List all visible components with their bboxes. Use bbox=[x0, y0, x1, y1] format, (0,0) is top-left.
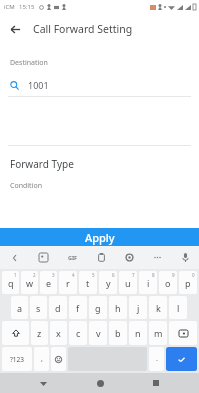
button[interactable]: Backspace bbox=[169, 321, 197, 345]
staticText: f bbox=[76, 302, 80, 314]
staticText: 3 bbox=[52, 272, 55, 278]
button[interactable]: Symbols bbox=[2, 347, 32, 371]
button[interactable]: Back bbox=[0, 14, 30, 44]
staticText: 0 bbox=[192, 272, 195, 278]
staticText: a bbox=[17, 302, 23, 314]
staticText: Destination bbox=[10, 58, 48, 68]
staticText: v bbox=[96, 327, 101, 339]
staticText: Apply bbox=[85, 230, 115, 245]
staticText: x bbox=[56, 327, 61, 339]
staticText: z bbox=[37, 327, 42, 339]
staticText: l bbox=[177, 302, 180, 314]
button[interactable]: Shift bbox=[2, 321, 29, 345]
button[interactable]: Voice input bbox=[171, 246, 199, 269]
staticText: k bbox=[156, 302, 161, 314]
staticText: d bbox=[55, 302, 61, 314]
staticText: u bbox=[125, 277, 131, 289]
button[interactable]: Settings bbox=[115, 246, 143, 269]
button[interactable]: i bbox=[139, 271, 157, 294]
staticText: 6 bbox=[112, 272, 115, 278]
staticText: s bbox=[36, 302, 41, 314]
button[interactable]: Comma bbox=[34, 347, 49, 371]
staticText: o bbox=[165, 277, 171, 289]
button[interactable]: Recents bbox=[143, 373, 169, 393]
button[interactable]: GIF bbox=[58, 246, 87, 269]
staticText: c bbox=[76, 327, 81, 339]
button[interactable]: More options bbox=[143, 246, 171, 269]
staticText: 1001 bbox=[28, 79, 49, 91]
button[interactable]: l bbox=[169, 296, 187, 319]
staticText: ?123 bbox=[10, 355, 24, 364]
staticText: w bbox=[26, 277, 34, 289]
button[interactable]: t bbox=[79, 271, 97, 294]
staticText: 9 bbox=[172, 272, 175, 278]
button[interactable]: w bbox=[21, 271, 38, 294]
button[interactable]: j bbox=[129, 296, 147, 319]
staticText: 5 bbox=[92, 272, 95, 278]
staticText: Call Forward Setting bbox=[33, 22, 133, 36]
staticText: 4 bbox=[72, 272, 75, 278]
button[interactable]: Stickers bbox=[29, 246, 58, 269]
button[interactable]: y bbox=[99, 271, 117, 294]
staticText: 8 bbox=[152, 272, 155, 278]
button[interactable]: h bbox=[109, 296, 127, 319]
staticText: q bbox=[8, 277, 14, 289]
button[interactable]: Previous bbox=[0, 246, 29, 269]
button[interactable]: v bbox=[89, 321, 107, 345]
staticText: m bbox=[154, 327, 163, 339]
button[interactable]: x bbox=[50, 321, 67, 345]
button[interactable]: Emoji bbox=[51, 347, 66, 371]
staticText: iCM bbox=[4, 3, 15, 11]
staticText: t bbox=[86, 277, 90, 289]
staticText: i bbox=[147, 277, 150, 289]
button[interactable]: m bbox=[149, 321, 167, 345]
button[interactable]: c bbox=[69, 321, 87, 345]
staticText: Condition bbox=[10, 181, 42, 191]
button[interactable]: Apply bbox=[0, 228, 199, 246]
button[interactable]: Hide keyboard bbox=[30, 373, 56, 393]
button[interactable]: p bbox=[179, 271, 197, 294]
staticText: 2 bbox=[33, 272, 36, 278]
button[interactable]: Enter bbox=[166, 347, 197, 371]
button[interactable]: k bbox=[149, 296, 167, 319]
button[interactable]: a bbox=[11, 296, 28, 319]
staticText: b bbox=[115, 327, 121, 339]
button[interactable]: 1001 bbox=[10, 77, 189, 93]
staticText: , bbox=[41, 354, 43, 364]
button[interactable]: Clipboard bbox=[87, 246, 115, 269]
staticText: j bbox=[137, 302, 140, 314]
button[interactable]: u bbox=[119, 271, 137, 294]
staticText: g bbox=[95, 302, 101, 314]
button[interactable]: o bbox=[159, 271, 177, 294]
staticText: p bbox=[185, 277, 191, 289]
staticText: n bbox=[135, 327, 141, 339]
button[interactable]: b bbox=[109, 321, 127, 345]
staticText: 7 bbox=[132, 272, 135, 278]
button[interactable]: Period bbox=[149, 347, 164, 371]
staticText: Forward Type bbox=[10, 157, 74, 171]
staticText: 15:15 bbox=[19, 3, 35, 11]
staticText: e bbox=[46, 277, 52, 289]
button[interactable]: z bbox=[31, 321, 48, 345]
staticText: h bbox=[115, 302, 121, 314]
button[interactable]: f bbox=[69, 296, 87, 319]
staticText: r bbox=[66, 277, 70, 289]
button[interactable]: d bbox=[49, 296, 67, 319]
staticText: y bbox=[106, 277, 111, 289]
button[interactable]: r bbox=[59, 271, 77, 294]
staticText: GIF bbox=[68, 254, 78, 261]
button[interactable]: g bbox=[89, 296, 107, 319]
button[interactable]: n bbox=[129, 321, 147, 345]
staticText: 1 bbox=[14, 272, 17, 278]
button[interactable]: s bbox=[30, 296, 47, 319]
button[interactable]: e bbox=[40, 271, 57, 294]
staticText: . bbox=[156, 354, 158, 364]
button[interactable]: Home bbox=[87, 373, 113, 393]
button[interactable]: q bbox=[2, 271, 19, 294]
